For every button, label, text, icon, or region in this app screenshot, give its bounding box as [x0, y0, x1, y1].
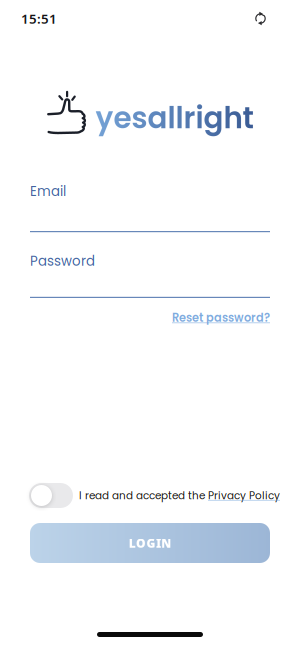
staticText: Password — [30, 252, 95, 270]
staticText: 15:51 — [21, 10, 57, 27]
staticText: I read and accepted the Privacy Policy — [79, 488, 280, 503]
button[interactable]: I read and accepted the Privacy Policy — [79, 488, 280, 503]
staticText: LOGIN — [129, 535, 171, 551]
button[interactable]: LOGIN — [30, 523, 270, 563]
staticText: Reset password? — [172, 310, 270, 326]
staticText: yesallright — [95, 97, 253, 139]
button[interactable]: Accept Privacy Policy — [29, 483, 73, 508]
staticText: Email — [30, 182, 66, 201]
button[interactable]: Reset password? — [172, 310, 270, 326]
